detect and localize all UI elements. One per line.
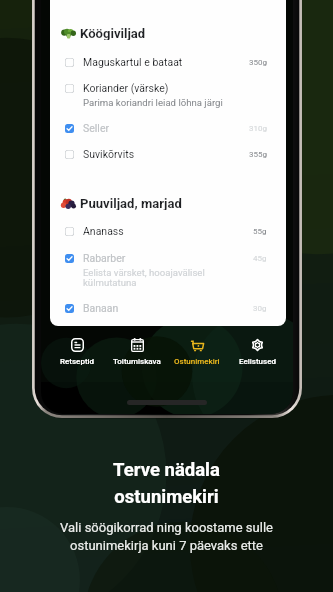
button[interactable]: Banaan bbox=[50, 295, 286, 321]
staticText: 310g bbox=[249, 124, 267, 133]
staticText: Vali söögikorrad ning koostame sulle ost… bbox=[60, 520, 273, 553]
staticText: Ananass bbox=[83, 225, 253, 237]
staticText: Köögiviljad bbox=[80, 26, 146, 40]
staticText: Puuviljad, marjad bbox=[80, 196, 182, 210]
staticText: 355g bbox=[249, 150, 267, 159]
staticText: Toitumiskava bbox=[113, 357, 161, 366]
staticText: Ostunimekiri bbox=[174, 357, 220, 366]
staticText: 45g bbox=[253, 254, 267, 263]
staticText: Maguskartul e bataat bbox=[83, 56, 249, 68]
button[interactable]: Rabarber bbox=[50, 245, 286, 271]
staticText: Rabarber bbox=[83, 252, 253, 264]
button[interactable]: Ananass bbox=[50, 218, 286, 244]
button[interactable]: Suvikõrvits bbox=[50, 141, 286, 167]
staticText: Eelistused bbox=[239, 357, 276, 366]
staticText: Banaan bbox=[83, 302, 253, 314]
staticText: Parima koriandri leiad lõhna järgi bbox=[83, 97, 223, 108]
staticText: 30g bbox=[253, 304, 267, 313]
staticText: Terve nädala ostunimekiri bbox=[113, 459, 220, 508]
staticText: 55g bbox=[253, 227, 267, 236]
staticText: Eelista värsket, hooajavälisel külmutatu… bbox=[83, 267, 205, 288]
button[interactable]: Maguskartul e bataat bbox=[50, 49, 286, 75]
button[interactable]: Meal plan bbox=[107, 330, 167, 370]
staticText: Seller bbox=[83, 122, 249, 134]
button[interactable]: Shopping list bbox=[167, 330, 227, 370]
staticText: Retseptid bbox=[60, 357, 95, 366]
button[interactable]: Recipes bbox=[48, 330, 107, 370]
button[interactable]: Preferences bbox=[227, 330, 287, 370]
button[interactable]: Koriander (värske) bbox=[50, 75, 286, 101]
staticText: Koriander (värske) bbox=[83, 82, 267, 94]
staticText: Suvikõrvits bbox=[83, 148, 249, 160]
staticText: 350g bbox=[249, 58, 267, 67]
button[interactable]: Seller bbox=[50, 115, 286, 141]
